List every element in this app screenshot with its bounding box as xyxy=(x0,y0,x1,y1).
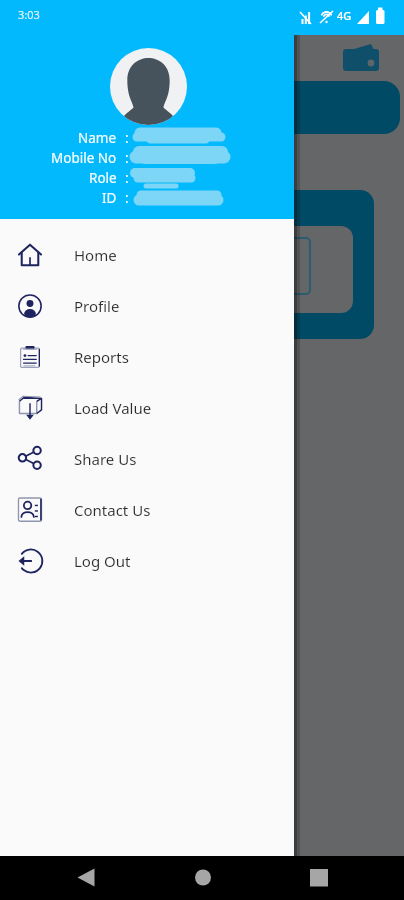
staticText: Home xyxy=(74,245,117,265)
other: Log Out xyxy=(18,549,42,573)
button[interactable]: Share Us xyxy=(0,433,294,484)
staticText: Profile xyxy=(74,296,120,316)
button[interactable]: Load Value xyxy=(0,382,294,433)
staticText: Name xyxy=(78,129,117,147)
staticText: Contact Us xyxy=(74,500,151,520)
staticText: : xyxy=(125,129,129,147)
staticText: 4G xyxy=(337,8,352,23)
staticText: : xyxy=(125,169,129,187)
staticText: : xyxy=(125,149,129,167)
staticText: Mobile No xyxy=(51,149,117,167)
staticText: Reports xyxy=(74,347,129,367)
other: Reports xyxy=(18,345,42,369)
button[interactable]: Profile xyxy=(0,280,294,331)
button[interactable]: Reports xyxy=(0,331,294,382)
other: Profile xyxy=(18,294,42,318)
staticText: Share Us xyxy=(74,449,137,469)
button[interactable]: Contact Us xyxy=(0,484,294,535)
staticText: 3:03 xyxy=(18,7,40,22)
staticText: ID xyxy=(102,189,117,207)
staticText: Log Out xyxy=(74,551,131,571)
button[interactable]: Log Out xyxy=(0,535,294,586)
other: Share Us xyxy=(18,447,42,471)
other: Home xyxy=(18,243,42,267)
other: Contact Us xyxy=(18,498,42,522)
staticText: Load Value xyxy=(74,398,152,418)
button[interactable]: Home xyxy=(0,229,294,280)
staticText: Role xyxy=(89,169,117,187)
other: Load Value xyxy=(18,396,42,420)
staticText: : xyxy=(125,189,129,207)
